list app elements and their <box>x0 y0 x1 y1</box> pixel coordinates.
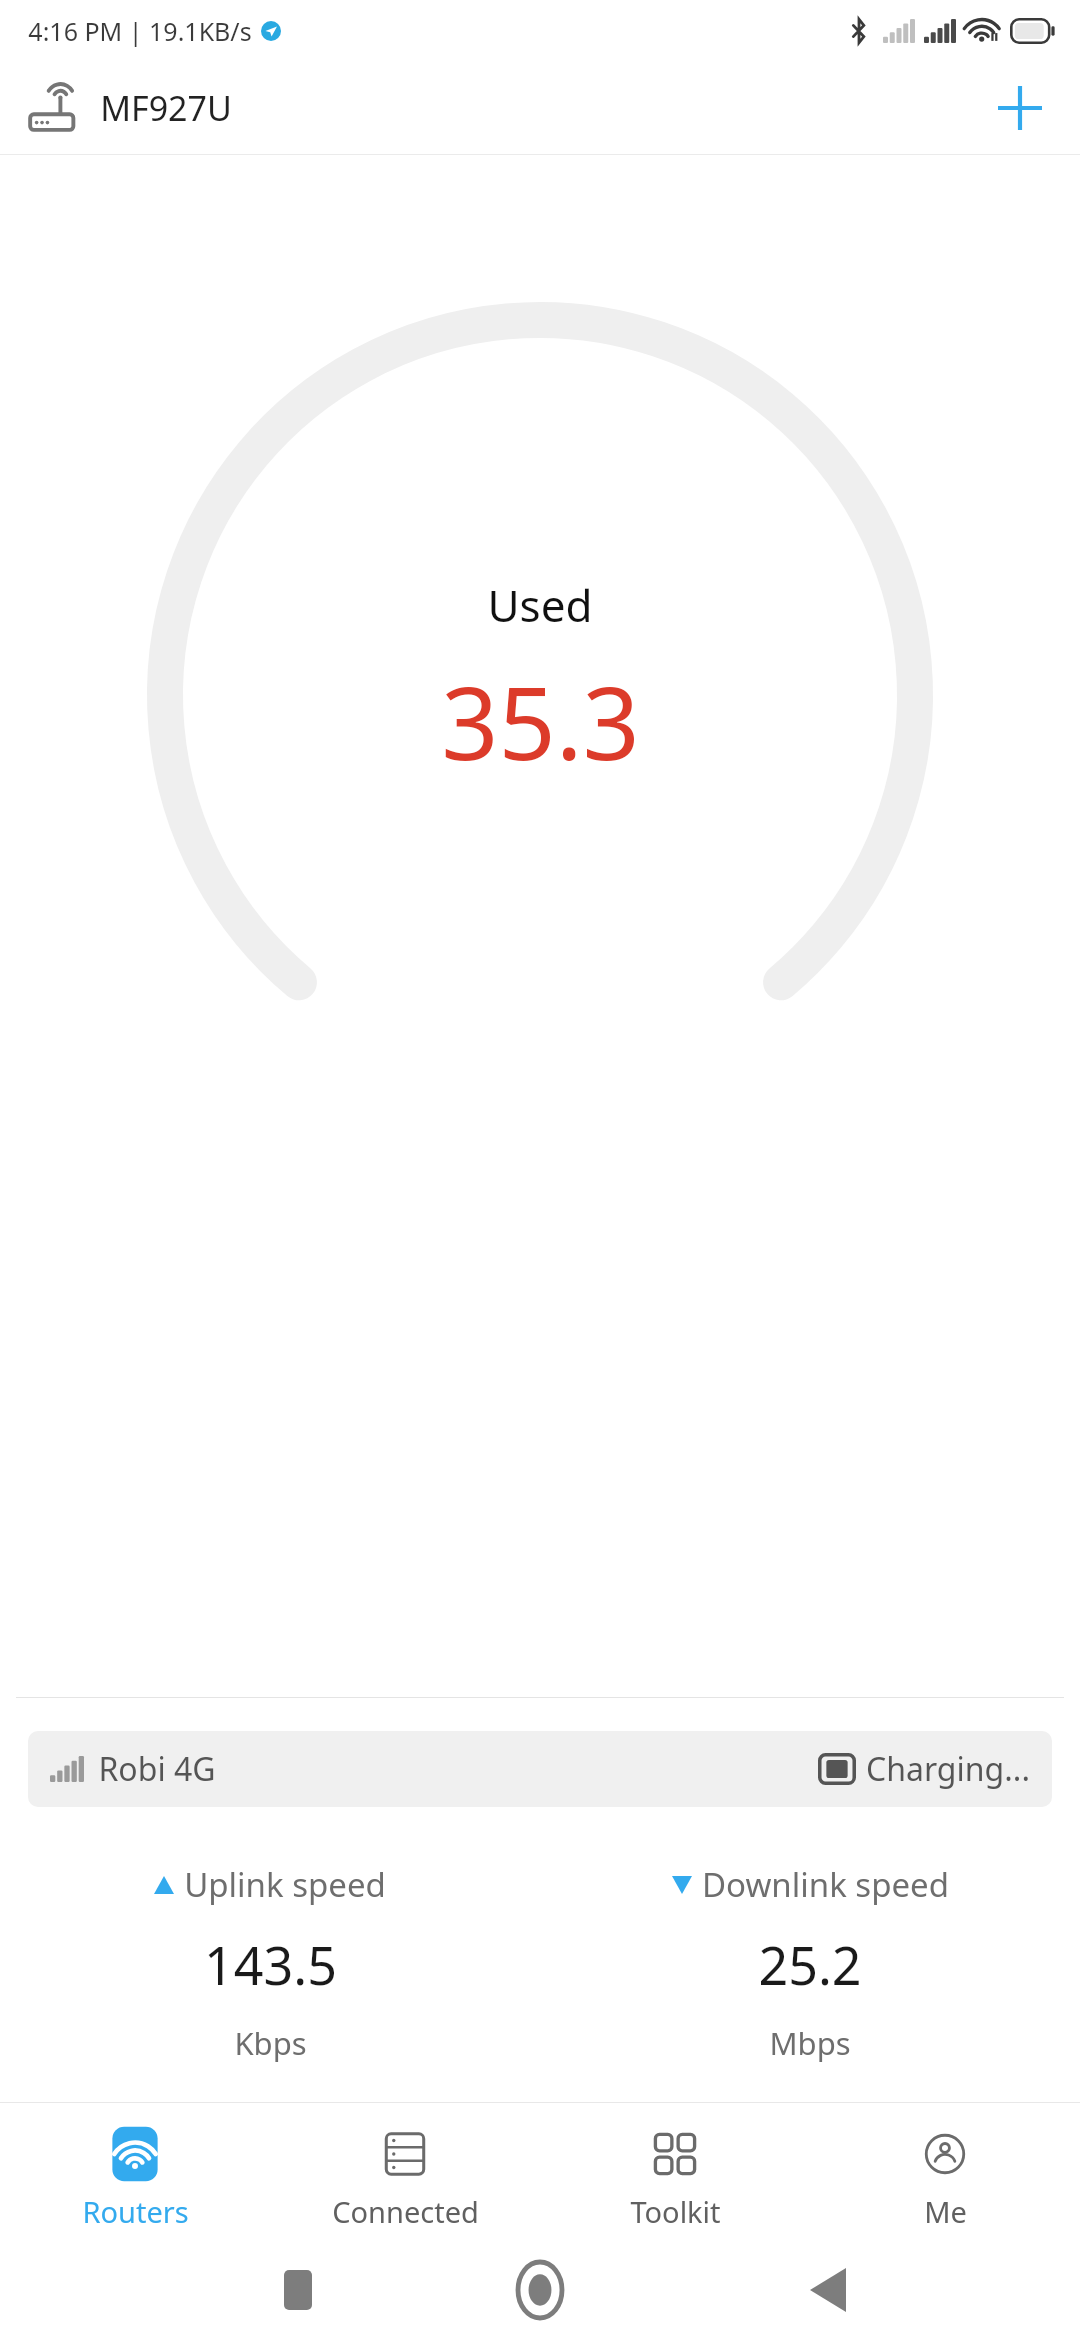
button[interactable]: Back <box>788 2250 868 2330</box>
staticText: MF927U <box>100 85 232 131</box>
button[interactable]: Routers <box>0 2112 270 2231</box>
staticText: 143.5 <box>204 1929 337 2000</box>
staticText: Connected <box>332 2192 479 2231</box>
staticText: Charging... <box>866 1747 1030 1791</box>
button[interactable]: Home <box>495 2245 585 2335</box>
staticText: Used <box>487 575 593 635</box>
button[interactable]: Downlink speed <box>540 1862 1080 2064</box>
staticText: Kbps <box>234 2022 307 2064</box>
button[interactable]: Uplink speed <box>0 1862 540 2064</box>
button[interactable]: Recents <box>258 2250 338 2330</box>
staticText: 25.2 <box>758 1929 862 2000</box>
staticText: 4:16 PM | 19.1KB/s <box>28 14 252 48</box>
staticText: Uplink speed <box>184 1862 386 1907</box>
button[interactable]: Me <box>810 2112 1080 2231</box>
button[interactable]: Connected <box>270 2112 540 2231</box>
button[interactable]: MF927U <box>28 82 232 134</box>
staticText: 35.3 <box>441 653 640 789</box>
staticText: Mbps <box>769 2022 851 2064</box>
staticText: Toolkit <box>630 2192 721 2231</box>
staticText: Downlink speed <box>702 1862 949 1907</box>
button[interactable]: Add router <box>980 68 1060 148</box>
button[interactable]: Toolkit <box>540 2112 810 2231</box>
staticText: Me <box>924 2192 967 2231</box>
staticText: Robi 4G <box>98 1747 216 1791</box>
staticText: Routers <box>82 2192 189 2231</box>
button[interactable]: Robi 4G <box>28 1731 1052 1807</box>
